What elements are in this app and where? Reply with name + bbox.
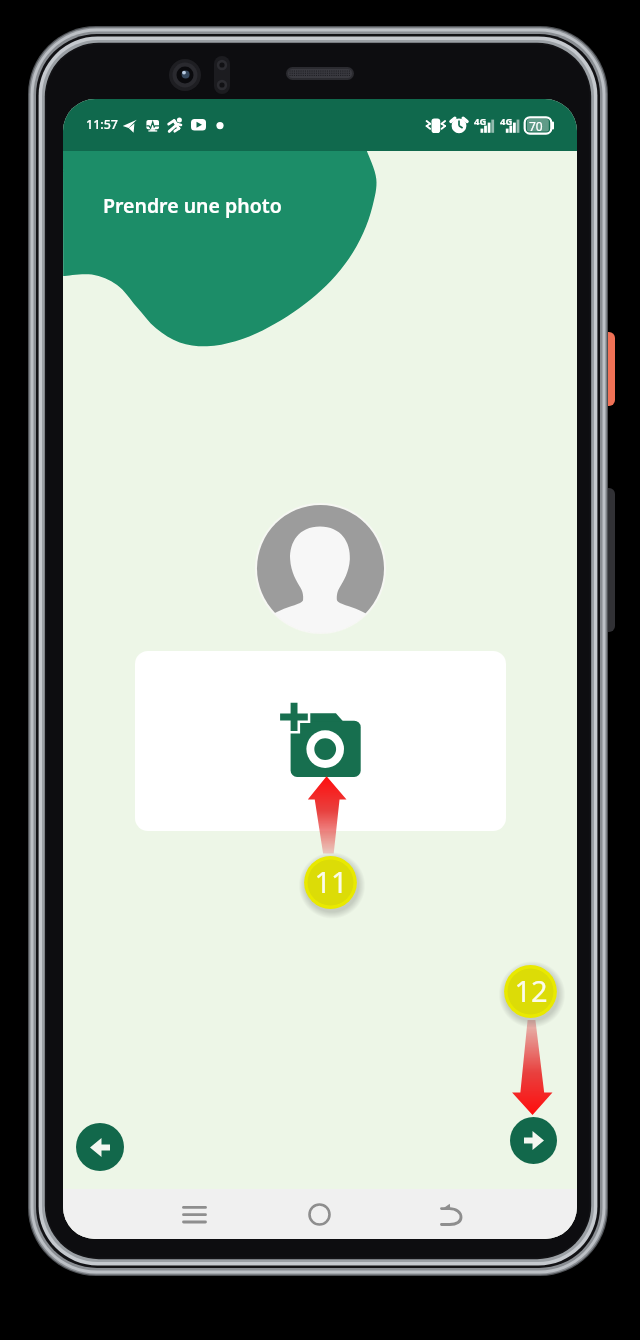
button[interactable]: Applications récentes: [170, 1190, 218, 1238]
button[interactable]: Suivant: [510, 1117, 557, 1164]
button[interactable]: Accueil: [295, 1190, 343, 1238]
staticText: 11:57: [86, 116, 119, 133]
staticText: 70: [529, 118, 543, 134]
staticText: 11: [314, 862, 348, 901]
staticText: 4G: [500, 115, 513, 128]
button[interactable]: Prendre une photo: [135, 651, 506, 831]
button[interactable]: Retour: [427, 1190, 475, 1238]
staticText: Prendre une photo: [103, 192, 282, 219]
staticText: 12: [514, 971, 548, 1010]
staticText: 4G: [474, 115, 487, 128]
button[interactable]: Précédent: [76, 1123, 124, 1171]
